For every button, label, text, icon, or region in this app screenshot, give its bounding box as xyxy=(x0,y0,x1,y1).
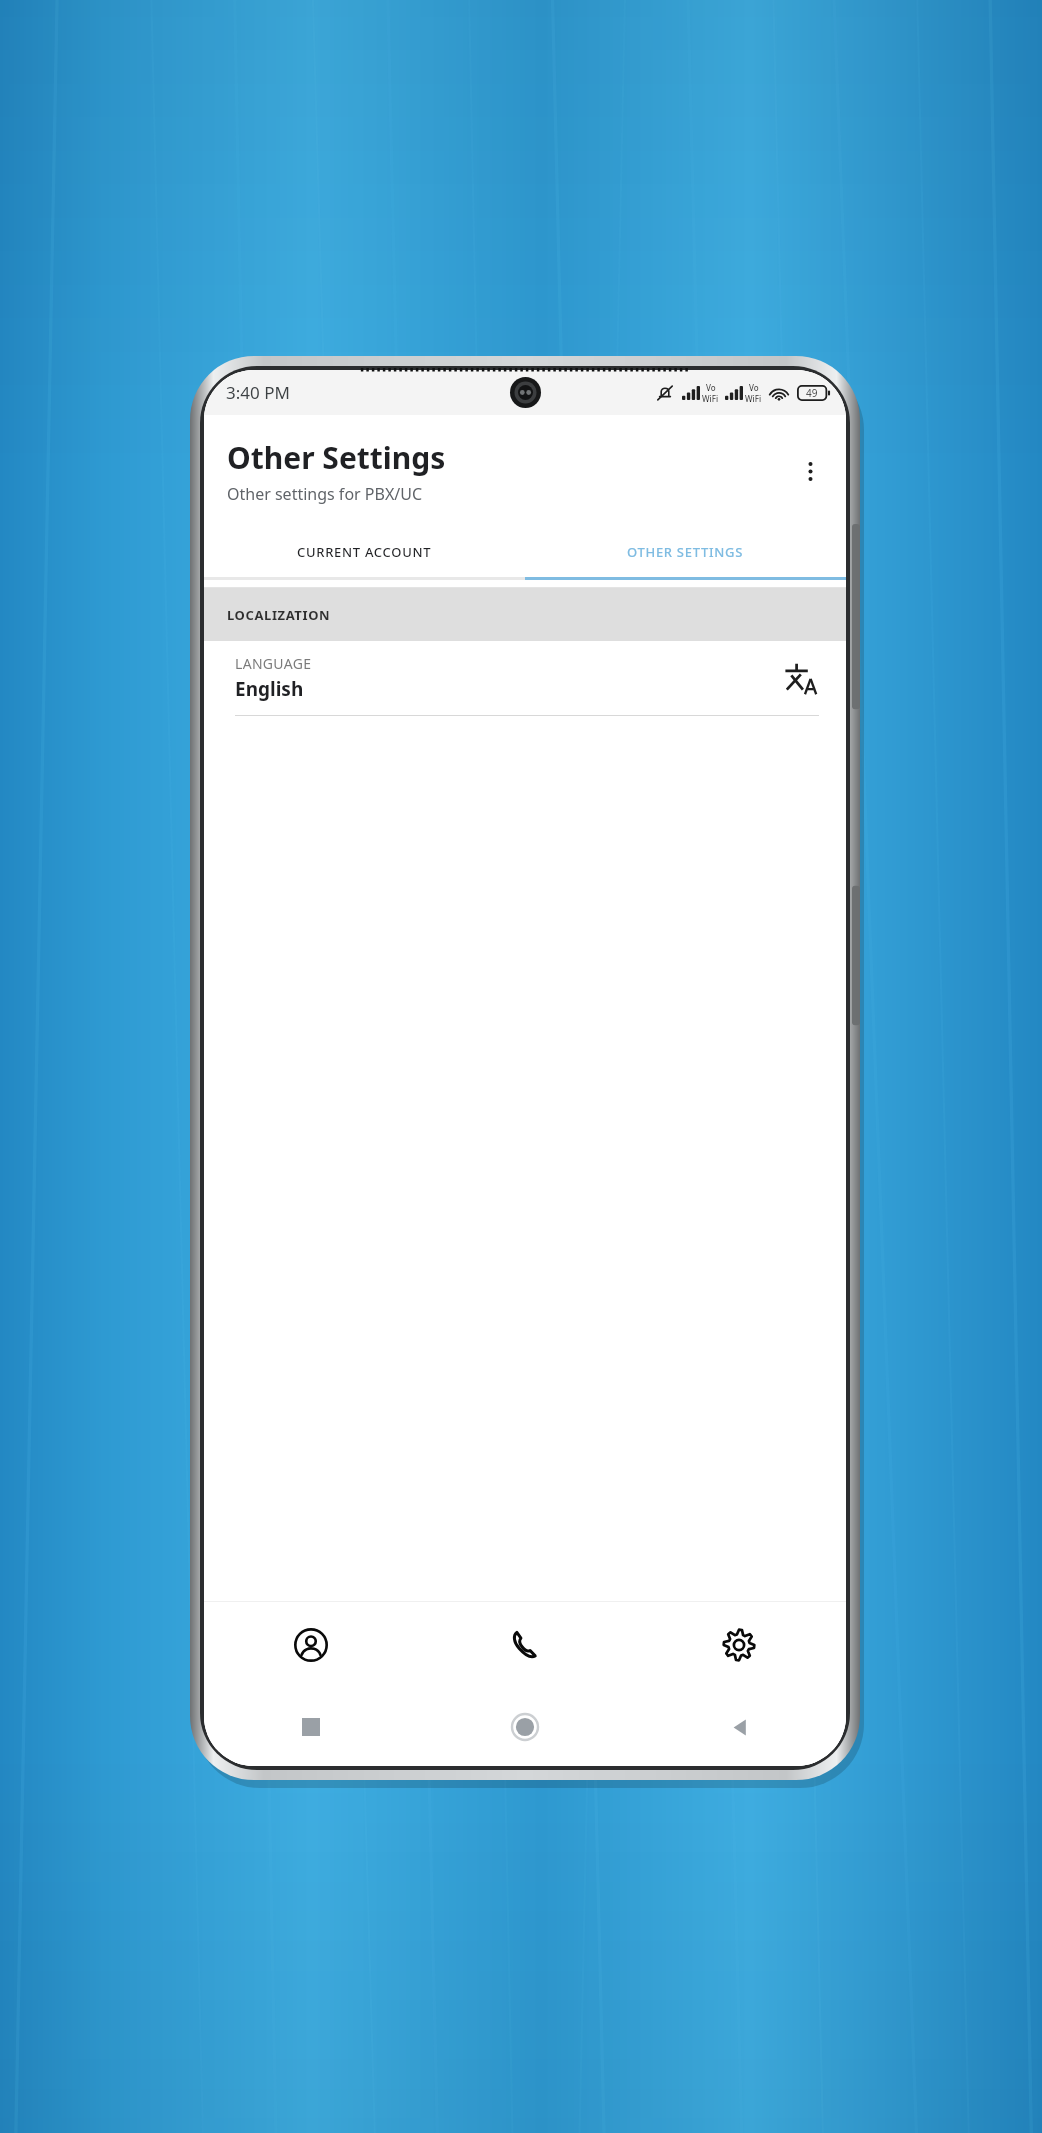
staticText: LOCALIZATION xyxy=(227,606,331,624)
button[interactable]: Calls xyxy=(418,1602,632,1688)
staticText: LANGUAGE xyxy=(235,654,312,673)
button[interactable]: More options xyxy=(786,447,834,495)
button[interactable]: CURRENT ACCOUNT xyxy=(204,527,525,577)
staticText: 3:40 PM xyxy=(226,381,290,404)
button[interactable]: Settings xyxy=(632,1602,846,1688)
staticText: CURRENT ACCOUNT xyxy=(297,543,432,561)
button[interactable]: OTHER SETTINGS xyxy=(525,527,846,577)
staticText: OTHER SETTINGS xyxy=(627,543,744,561)
staticText: 49 xyxy=(806,386,818,400)
staticText: Vo xyxy=(749,382,759,393)
staticText: Other settings for PBX/UC xyxy=(227,483,423,505)
staticText: WiFi xyxy=(702,393,719,404)
button[interactable]: Account xyxy=(204,1602,418,1688)
staticText: Vo xyxy=(706,382,716,393)
button[interactable]: Back xyxy=(632,1688,846,1766)
staticText: English xyxy=(235,676,304,702)
other: Translate xyxy=(784,661,819,696)
button[interactable]: LANGUAGE xyxy=(204,641,846,716)
staticText: Other Settings xyxy=(227,437,446,478)
button[interactable]: Home xyxy=(418,1688,632,1766)
staticText: WiFi xyxy=(745,393,762,404)
button[interactable]: Recent apps xyxy=(204,1688,418,1766)
